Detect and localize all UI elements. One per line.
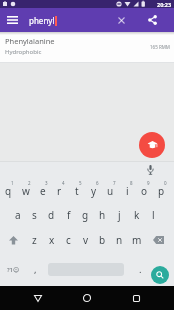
button[interactable]: p: [153, 179, 170, 203]
button[interactable]: j: [111, 203, 128, 227]
staticText: a: [15, 208, 21, 222]
staticText: .: [139, 263, 142, 276]
button[interactable]: m: [128, 227, 145, 253]
staticText: w: [22, 184, 30, 198]
staticText: 9: [147, 180, 150, 186]
button[interactable]: [75, 286, 99, 310]
button[interactable]: l: [145, 203, 162, 227]
staticText: 2: [28, 180, 31, 186]
button[interactable]: g: [77, 203, 94, 227]
button[interactable]: [145, 227, 171, 253]
button[interactable]: [143, 163, 157, 177]
button[interactable]: [151, 266, 169, 284]
button[interactable]: [145, 13, 159, 27]
button[interactable]: [0, 227, 26, 253]
staticText: b: [99, 233, 106, 247]
button[interactable]: a: [9, 203, 26, 227]
button[interactable]: Phenylalanine: [0, 32, 174, 63]
staticText: y: [91, 184, 97, 198]
button[interactable]: n: [111, 227, 128, 253]
button[interactable]: .: [134, 253, 146, 286]
staticText: 0: [164, 180, 167, 186]
button[interactable]: [139, 132, 165, 158]
staticText: Phenylalanine: [5, 36, 55, 46]
staticText: 20:23: [157, 1, 172, 8]
button[interactable]: y: [85, 179, 102, 203]
button[interactable]: [114, 13, 128, 27]
staticText: k: [134, 208, 140, 222]
button[interactable]: b: [94, 227, 111, 253]
staticText: ?1☺: [7, 266, 20, 274]
button[interactable]: i: [119, 179, 136, 203]
staticText: r: [57, 184, 62, 198]
staticText: 5: [79, 180, 82, 186]
staticText: e: [40, 184, 46, 198]
button[interactable]: [124, 286, 148, 310]
staticText: phenyl: [29, 15, 55, 26]
staticText: 4: [62, 180, 65, 186]
button[interactable]: h: [94, 203, 111, 227]
staticText: v: [83, 233, 89, 247]
staticText: 6: [96, 180, 99, 186]
staticText: q: [5, 184, 12, 198]
button[interactable]: u: [102, 179, 119, 203]
staticText: 1: [11, 180, 14, 186]
staticText: u: [107, 184, 114, 198]
button[interactable]: [4, 12, 20, 28]
button[interactable]: [26, 286, 50, 310]
staticText: n: [116, 233, 123, 247]
staticText: 8: [130, 180, 133, 186]
staticText: j: [118, 208, 121, 222]
button[interactable]: z: [26, 227, 43, 253]
staticText: m: [132, 233, 142, 247]
staticText: ,: [34, 263, 37, 276]
button[interactable]: f: [60, 203, 77, 227]
staticText: d: [48, 208, 55, 222]
button[interactable]: x: [43, 227, 60, 253]
button[interactable]: q: [0, 179, 17, 203]
button[interactable]: w: [17, 179, 34, 203]
staticText: z: [32, 233, 37, 247]
staticText: p: [158, 184, 165, 198]
staticText: c: [66, 233, 71, 247]
button[interactable]: k: [128, 203, 145, 227]
staticText: h: [99, 208, 106, 222]
button[interactable]: o: [136, 179, 153, 203]
button[interactable]: c: [60, 227, 77, 253]
staticText: 165 RMM: [150, 44, 170, 50]
staticText: l: [152, 208, 155, 222]
staticText: o: [141, 184, 148, 198]
button[interactable]: t: [68, 179, 85, 203]
button[interactable]: s: [26, 203, 43, 227]
staticText: s: [32, 208, 37, 222]
button[interactable]: v: [77, 227, 94, 253]
button[interactable]: r: [51, 179, 68, 203]
staticText: f: [67, 208, 71, 222]
staticText: g: [82, 208, 89, 222]
staticText: x: [49, 233, 55, 247]
staticText: 7: [113, 180, 116, 186]
staticText: Hydrophobic: [5, 48, 42, 56]
staticText: 3: [45, 180, 48, 186]
button[interactable]: ?1☺: [0, 253, 27, 286]
button[interactable]: e: [34, 179, 51, 203]
staticText: t: [75, 184, 79, 198]
staticText: i: [126, 184, 129, 198]
button[interactable]: d: [43, 203, 60, 227]
button[interactable]: ,: [27, 253, 43, 286]
